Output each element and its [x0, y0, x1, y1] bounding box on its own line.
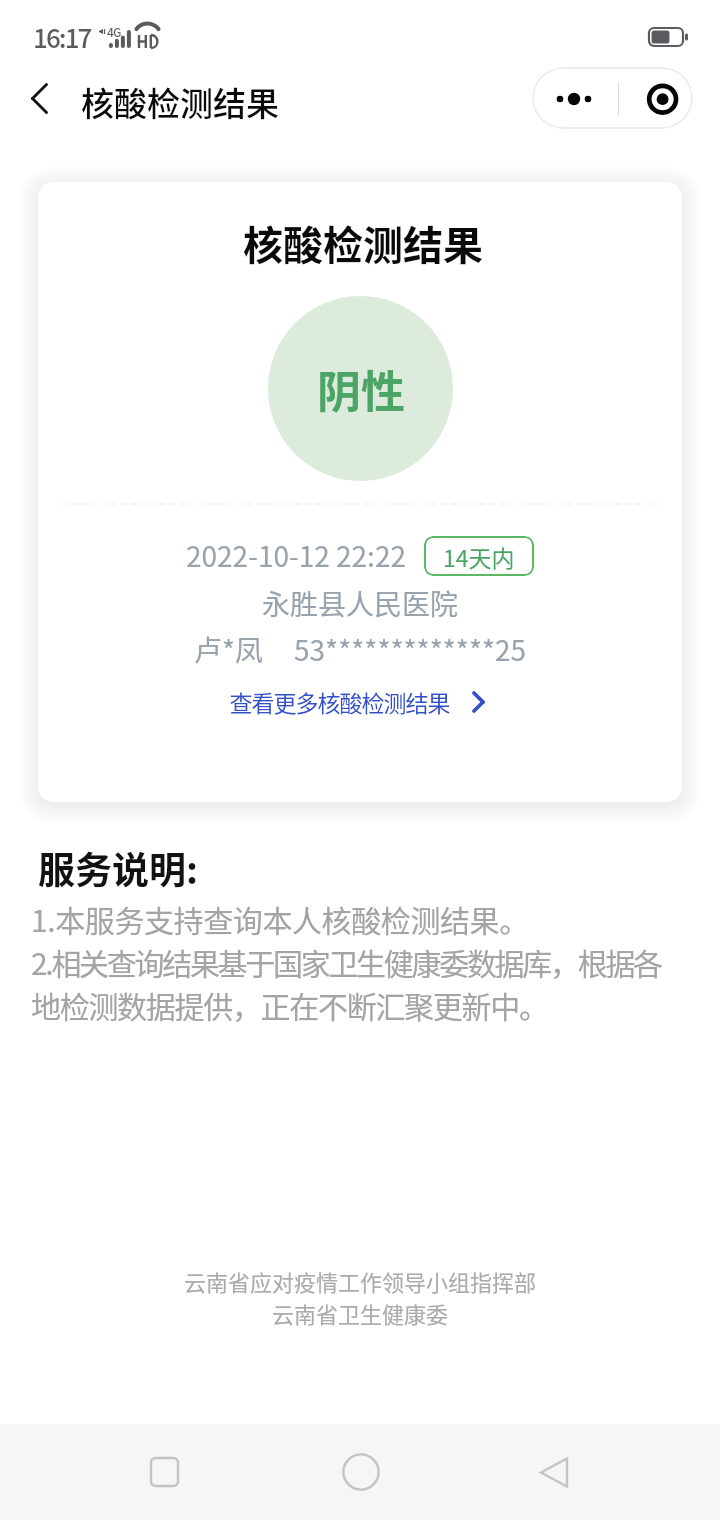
button[interactable]: Back — [14, 73, 64, 123]
staticText: 2022-10-12 22:22 — [186, 535, 406, 576]
staticText: 核酸检测结果 — [81, 78, 279, 126]
staticText: 云南省应对疫情工作领导小组指挥部 — [184, 1265, 537, 1297]
staticText: 服务说明: — [38, 841, 199, 895]
staticText: 核酸检测结果 — [243, 214, 483, 272]
staticText: 16:17 — [33, 18, 91, 56]
staticText: 14天内 — [443, 540, 515, 573]
button[interactable]: More options — [532, 67, 618, 129]
staticText: 2.相关查询结果基于国家卫生健康委数据库，根据各 — [31, 940, 661, 983]
staticText: 永胜县人民医院 — [262, 583, 459, 624]
button[interactable]: Home — [313, 1424, 409, 1520]
staticText: 卢*凤 — [194, 629, 264, 670]
staticText: 1.本服务支持查询本人核酸检测结果。 — [31, 897, 529, 940]
button[interactable]: 查看更多核酸检测结果 — [220, 679, 495, 724]
button[interactable]: Recent apps — [116, 1424, 212, 1520]
staticText: 53*************25 — [294, 629, 527, 670]
staticText: 阴性 — [317, 357, 405, 421]
staticText: 云南省卫生健康委 — [272, 1297, 449, 1329]
staticText: 地检测数据提供，正在不断汇聚更新中。 — [31, 983, 548, 1026]
staticText: 查看更多核酸检测结果 — [230, 685, 450, 718]
staticText: 4G — [107, 23, 121, 40]
button[interactable]: Close mini program — [620, 67, 693, 129]
button[interactable]: Back — [506, 1424, 602, 1520]
